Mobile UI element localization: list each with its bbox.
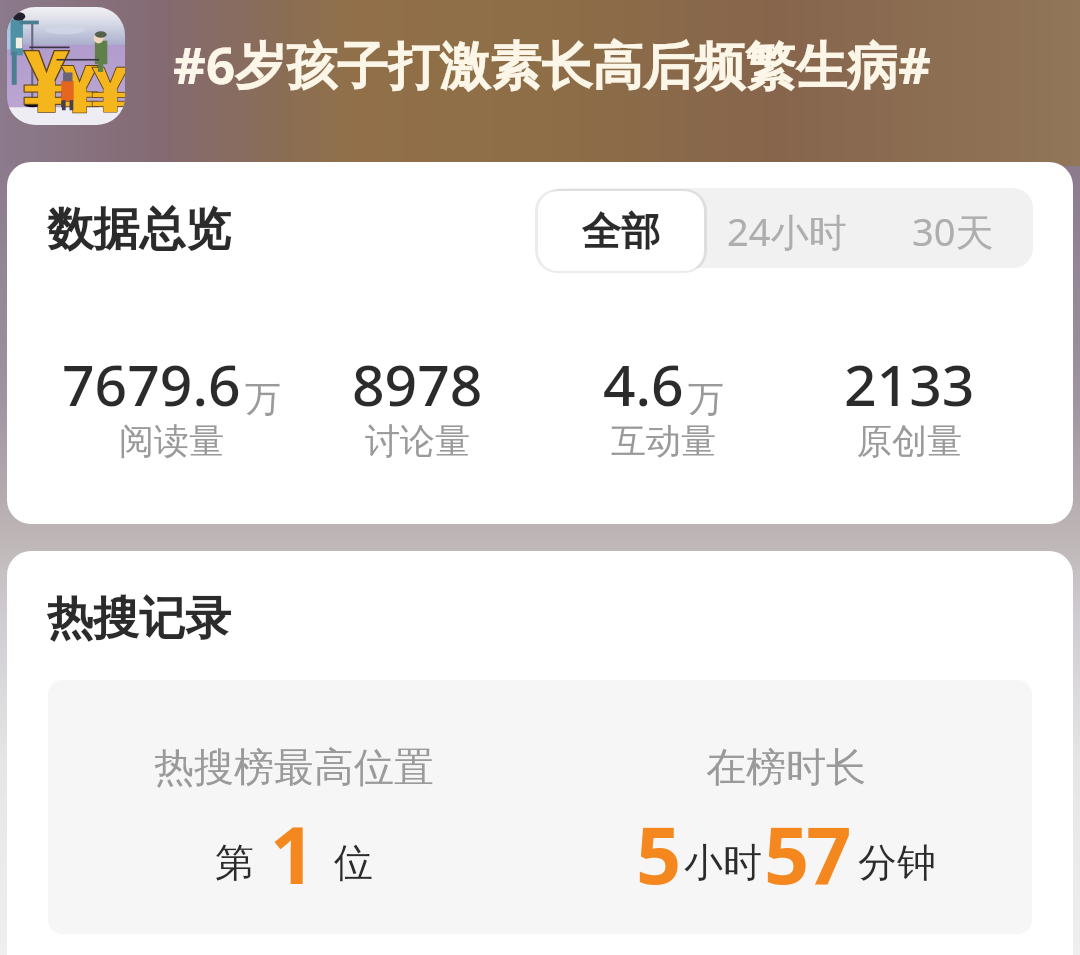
staticText: 讨论量 bbox=[365, 419, 470, 463]
button[interactable]: 2133 bbox=[786, 345, 1032, 467]
staticText: 24小时 bbox=[727, 205, 847, 257]
staticText: 第 bbox=[215, 838, 254, 887]
staticText: 互动量 bbox=[611, 419, 716, 463]
staticText: 1 bbox=[270, 800, 316, 908]
staticText: 2133 bbox=[844, 345, 975, 423]
staticText: 万 bbox=[245, 376, 281, 421]
staticText: 位 bbox=[334, 838, 373, 887]
button[interactable]: 30天 bbox=[870, 191, 1036, 271]
staticText: 数据总览 bbox=[47, 201, 231, 259]
staticText: 30天 bbox=[912, 205, 994, 257]
button[interactable]: 8978 bbox=[294, 345, 540, 467]
staticText: 7679.6 bbox=[62, 345, 241, 423]
staticText: 小时 bbox=[684, 838, 762, 887]
staticText: 8978 bbox=[352, 345, 483, 423]
staticText: 热搜记录 bbox=[47, 590, 231, 648]
button[interactable]: 全部 bbox=[538, 191, 704, 271]
staticText: 热搜榜最高位置 bbox=[154, 742, 434, 792]
button[interactable]: Topic cover image bbox=[7, 7, 125, 125]
button[interactable]: 4.6 bbox=[540, 345, 786, 467]
button[interactable]: 7679.6 bbox=[48, 345, 294, 467]
staticText: 57 bbox=[764, 800, 849, 908]
staticText: 分钟 bbox=[858, 838, 936, 887]
staticText: 在榜时长 bbox=[706, 742, 866, 792]
button[interactable]: 热搜榜最高位置 bbox=[48, 680, 540, 838]
staticText: 5 bbox=[636, 800, 682, 908]
staticText: 原创量 bbox=[857, 419, 962, 463]
staticText: 万 bbox=[688, 376, 724, 421]
button[interactable]: 24小时 bbox=[704, 191, 870, 271]
button[interactable]: 在榜时长 bbox=[540, 680, 1032, 838]
staticText: 全部 bbox=[582, 207, 660, 256]
staticText: 阅读量 bbox=[119, 419, 224, 463]
staticText: #6岁孩子打激素长高后频繁生病# bbox=[173, 29, 932, 99]
staticText: 4.6 bbox=[603, 345, 684, 423]
